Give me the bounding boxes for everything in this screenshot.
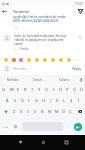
staticText: X [20, 109, 23, 114]
staticText: W [10, 87, 14, 92]
button[interactable]: G [33, 95, 40, 106]
button[interactable]: J [47, 95, 54, 106]
button[interactable]: K [54, 95, 61, 106]
button[interactable]: I [50, 84, 57, 95]
staticText: Ğ [73, 87, 76, 92]
staticText: B [41, 109, 44, 114]
staticText: U [45, 87, 48, 92]
button[interactable]: Z [11, 106, 18, 117]
button[interactable]: İ [75, 95, 82, 106]
button[interactable]: Ç [67, 106, 74, 117]
button[interactable]: melis_ar Sonunda muhteşem enerjiyi [3, 34, 83, 50]
staticText: Yanıt ekle... [13, 67, 72, 71]
staticText: O [59, 87, 63, 92]
staticText: melis_ar Sonunda muhteşem enerjiyi [14, 34, 67, 38]
button[interactable]: V [32, 106, 39, 117]
button[interactable]: R [22, 84, 29, 95]
staticText: I [53, 87, 55, 92]
staticText: E [17, 87, 20, 92]
button[interactable]: Back [15, 137, 25, 147]
button[interactable]: Emoji reaction [58, 57, 64, 63]
button[interactable]: Merhaba [0, 75, 25, 84]
staticText: K [56, 98, 59, 103]
button[interactable]: Emoji keyboard [13, 124, 18, 129]
staticText: etkinlik ve paylaşım için teşekkürler [14, 38, 64, 42]
staticText: P [66, 87, 69, 92]
button[interactable]: Emoji reaction [18, 57, 24, 63]
staticText: Kullanıcı [59, 78, 70, 82]
button[interactable]: Voice input [77, 75, 85, 84]
staticText: D [21, 98, 24, 103]
button[interactable]: Back [0, 7, 9, 15]
button[interactable]: Share [76, 7, 84, 15]
button[interactable]: L [61, 95, 68, 106]
button[interactable]: S [11, 95, 19, 106]
button[interactable]: M [53, 106, 60, 117]
staticText: Ö [62, 109, 66, 114]
staticText: F [28, 98, 31, 103]
button[interactable]: . [68, 124, 69, 128]
button[interactable]: Tamam [25, 75, 51, 84]
button[interactable]: A [3, 95, 11, 106]
staticText: T [31, 87, 34, 92]
staticText: 1s [14, 47, 17, 50]
button[interactable]: Emoji reaction [3, 57, 9, 63]
button[interactable]: Emoji reaction [42, 57, 48, 63]
staticText: H [42, 98, 45, 103]
button[interactable]: Emoji reaction [50, 57, 56, 63]
button[interactable]: H [40, 95, 47, 106]
button[interactable]: Ü [78, 84, 85, 95]
staticText: R [24, 87, 27, 92]
staticText: Ç [69, 109, 72, 114]
staticText: Y [38, 87, 41, 92]
staticText: İ [78, 98, 80, 103]
staticText: M [55, 109, 59, 114]
button[interactable]: Yanıtla [20, 47, 29, 50]
button[interactable]: Kullanıcı [51, 75, 77, 84]
button[interactable]: O [57, 84, 64, 95]
button[interactable]: D [19, 95, 26, 106]
staticText: Ü [80, 87, 83, 92]
button[interactable]: ?123 [3, 125, 9, 128]
button[interactable]: Shift [0, 106, 11, 117]
button[interactable]: W [8, 84, 15, 95]
staticText: C [27, 109, 30, 114]
button[interactable]: P [64, 84, 71, 95]
staticText: Ş [70, 98, 73, 103]
button[interactable]: Like [78, 35, 83, 40]
staticText: Yorumlar [13, 9, 30, 14]
button[interactable]: B [39, 106, 46, 117]
staticText: N [48, 109, 52, 114]
staticText: ayşebelkıs Harika insanlarla bir arada [13, 15, 66, 19]
button[interactable]: Home [38, 137, 48, 147]
button[interactable]: Q [0, 84, 8, 95]
staticText: J [50, 98, 52, 103]
button[interactable]: Y [36, 84, 43, 95]
button[interactable]: Emoji reaction [66, 57, 72, 63]
button[interactable]: Recents [61, 137, 71, 147]
staticText: L [63, 98, 66, 103]
button[interactable]: C [25, 106, 32, 117]
button[interactable]: Backspace [74, 106, 85, 117]
staticText: 11:57 [75, 2, 83, 6]
button[interactable]: Emoji reaction [26, 57, 32, 63]
staticText: Z [13, 109, 16, 114]
staticText: A [6, 98, 9, 103]
button[interactable]: Ğ [71, 84, 78, 95]
button[interactable]: T [29, 84, 36, 95]
button[interactable]: Ö [60, 106, 67, 117]
button[interactable]: Emoji reaction [34, 57, 40, 63]
button[interactable]: Ş [68, 95, 75, 106]
button[interactable]: Paylaş [72, 67, 81, 71]
button[interactable]: E [15, 84, 22, 95]
staticText: G [35, 98, 38, 103]
button[interactable]: X [18, 106, 25, 117]
button[interactable]: Send [74, 123, 82, 131]
button[interactable]: F [26, 95, 33, 106]
button[interactable]: U [43, 84, 50, 95]
button[interactable]: Emoji reaction [11, 57, 17, 63]
staticText: #OYC #Önileş #2020 #KIZ #GÜL [13, 19, 59, 23]
button[interactable]: N [46, 106, 53, 117]
staticText: Merhaba [7, 78, 19, 82]
